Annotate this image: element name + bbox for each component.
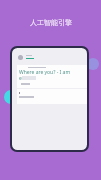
staticText: Where are you? - I am	[19, 69, 71, 76]
staticText: e	[19, 75, 22, 82]
staticText: 人工智能引擎	[30, 18, 72, 27]
